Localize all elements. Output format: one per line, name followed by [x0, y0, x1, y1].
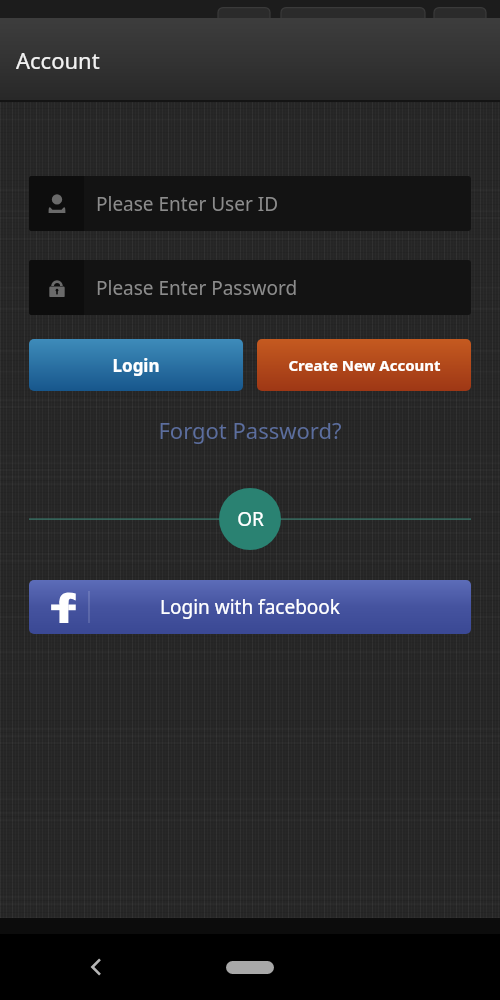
button[interactable]: Please Enter Password	[29, 260, 471, 315]
staticText: Login with facebook	[160, 594, 340, 620]
button[interactable]: Login with facebook	[29, 580, 471, 634]
button[interactable]: Home	[220, 950, 280, 984]
staticText: Account	[16, 45, 100, 75]
button[interactable]: Login	[29, 339, 243, 391]
staticText: Login	[112, 354, 160, 377]
staticText: Please Enter Password	[96, 275, 298, 301]
button[interactable]: Back	[74, 945, 118, 989]
staticText: OR	[237, 506, 264, 532]
button[interactable]: Please Enter User ID	[29, 176, 471, 231]
staticText: Create New Account	[288, 355, 441, 375]
button[interactable]: Create New Account	[257, 339, 471, 391]
staticText: Please Enter User ID	[96, 191, 279, 217]
button[interactable]: Forgot Password?	[29, 415, 471, 445]
staticText: Forgot Password?	[158, 415, 342, 445]
